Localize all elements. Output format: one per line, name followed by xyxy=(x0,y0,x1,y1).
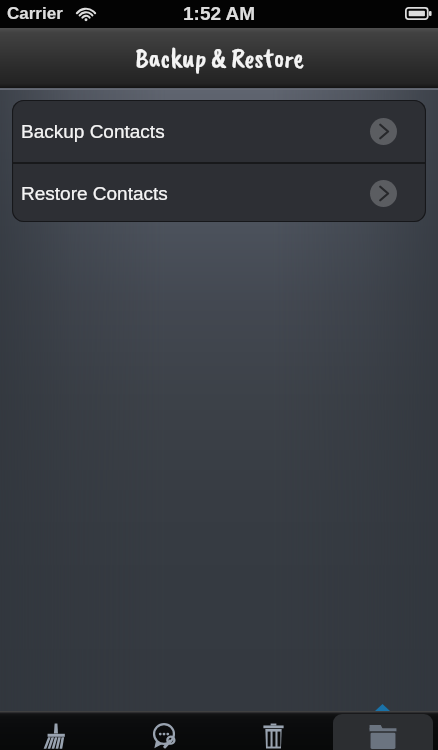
button[interactable]: Backup Contacts xyxy=(12,100,426,162)
button[interactable]: Delete xyxy=(218,711,328,750)
button[interactable]: Restore Contacts xyxy=(12,164,426,222)
button[interactable]: Support xyxy=(109,711,218,750)
button[interactable]: Files xyxy=(328,711,438,750)
button[interactable]: Cleaner xyxy=(0,711,109,750)
staticText: Carrier xyxy=(7,4,63,23)
staticText: Backup & Restore xyxy=(135,41,304,76)
staticText: 1:52 AM xyxy=(183,3,256,24)
staticText: Backup Contacts xyxy=(21,121,165,142)
staticText: Restore Contacts xyxy=(21,183,168,204)
